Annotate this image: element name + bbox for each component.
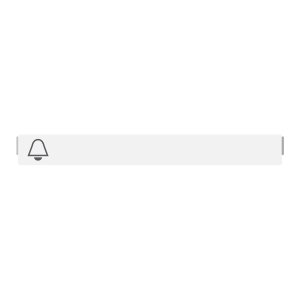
button[interactable]: Notifications [18, 134, 282, 165]
